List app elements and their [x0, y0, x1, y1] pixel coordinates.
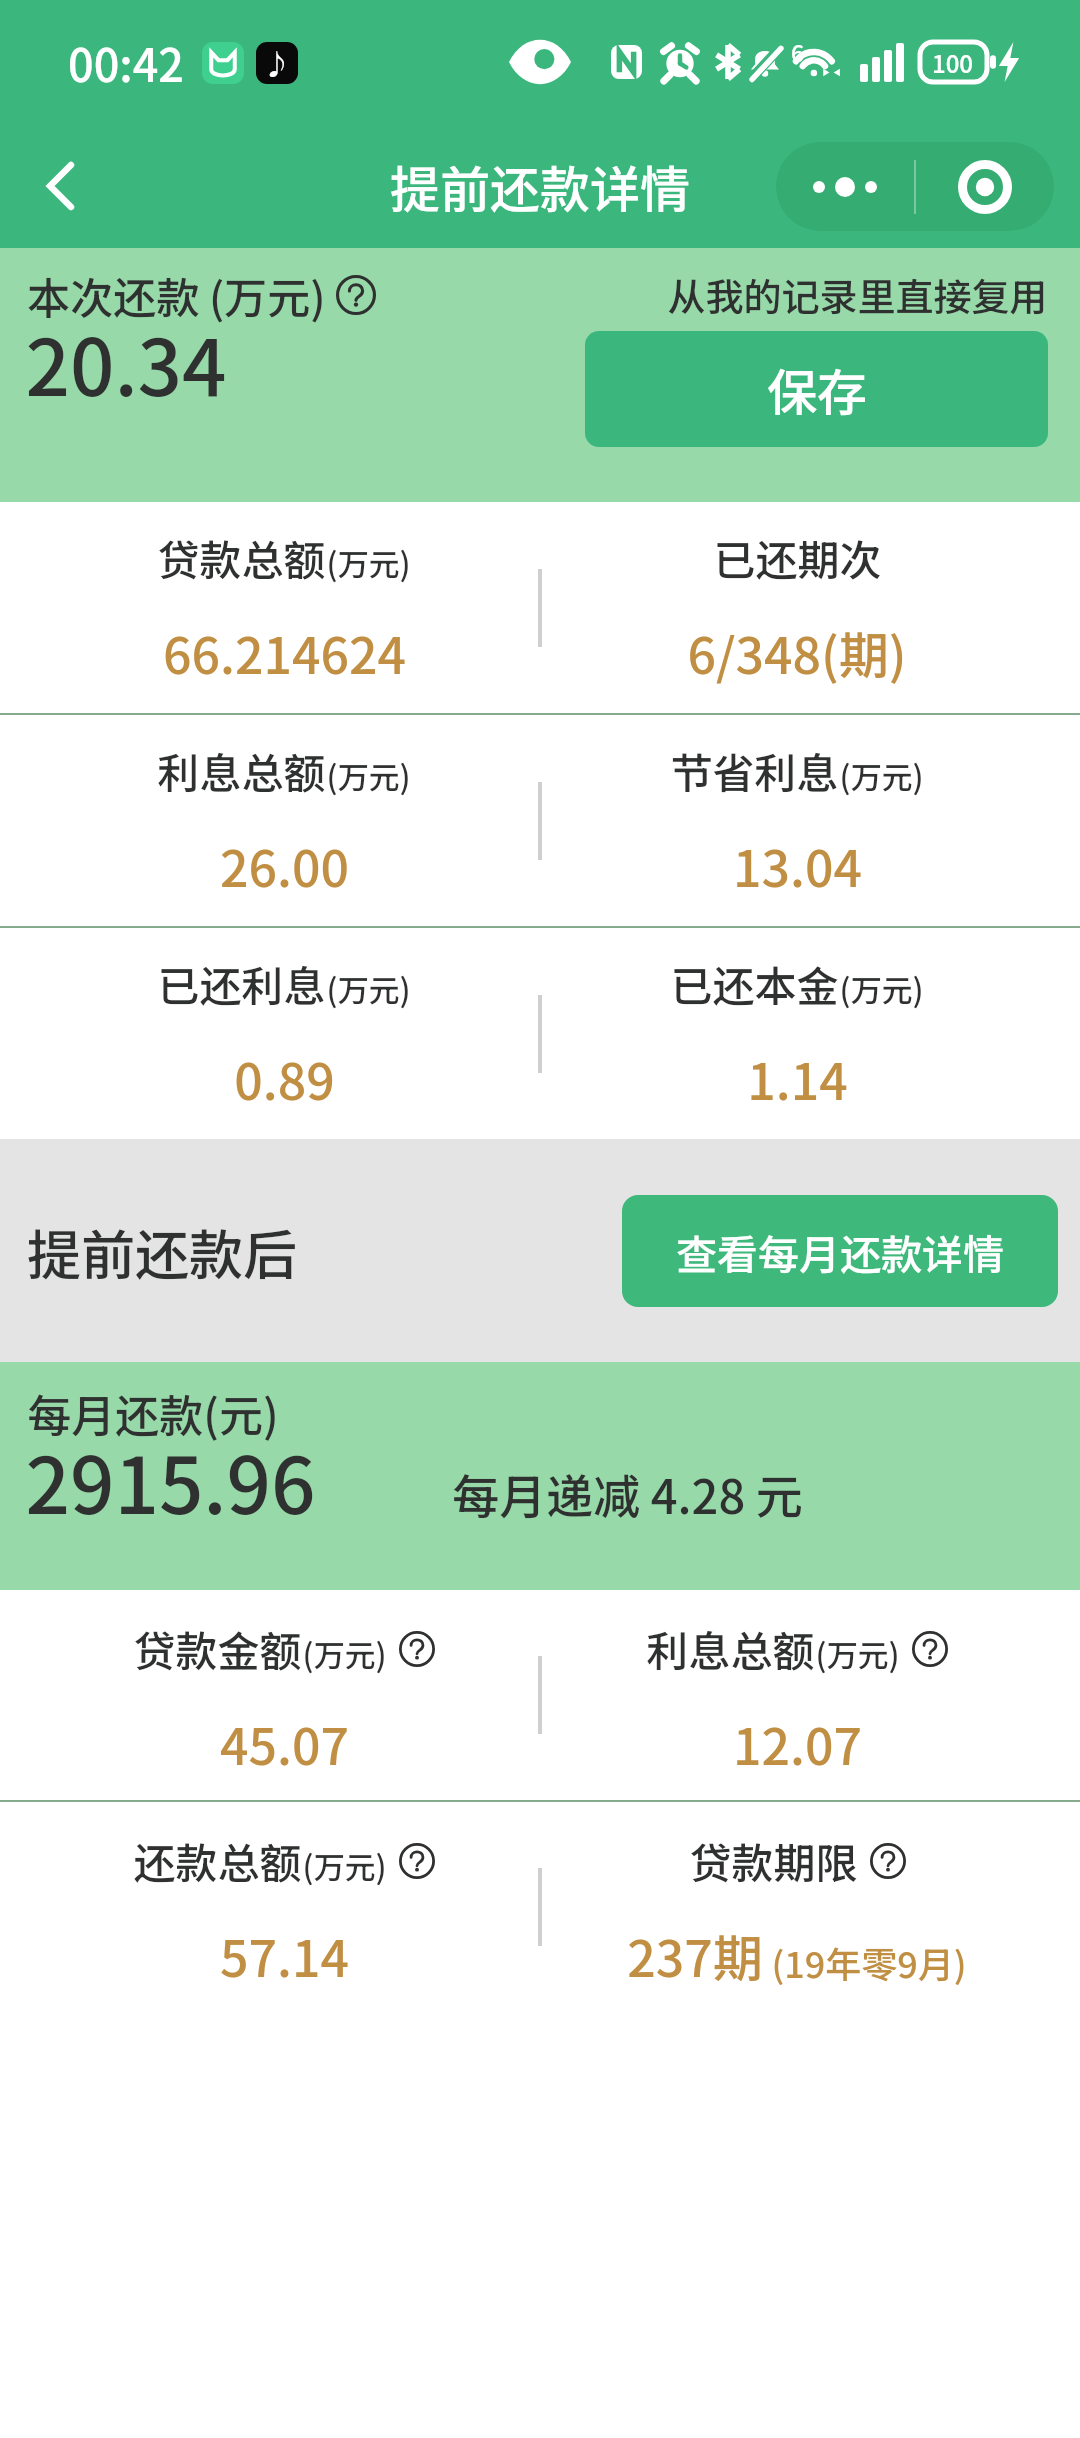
- staticText: 利息总额: [157, 740, 326, 801]
- staticText: (万元): [326, 540, 411, 585]
- staticText: 保存: [767, 353, 867, 425]
- staticText: (万元): [326, 753, 411, 798]
- button[interactable]: Back: [20, 146, 100, 226]
- staticText: (万元): [839, 966, 924, 1011]
- staticText: (万元): [815, 1631, 900, 1676]
- button[interactable]: More options: [776, 142, 914, 231]
- staticText: 已还本金: [670, 953, 839, 1014]
- staticText: 100: [932, 45, 974, 80]
- staticText: 还款总额: [133, 1830, 302, 1891]
- staticText: 已还期次: [713, 527, 882, 588]
- button[interactable]: 贷款总额: [27, 502, 540, 713]
- staticText: 6/348(期): [687, 616, 907, 688]
- button[interactable]: 保存: [585, 331, 1048, 447]
- staticText: 00:42: [68, 30, 185, 95]
- staticText: 查看每月还款详情: [676, 1222, 1004, 1281]
- staticText: 已还利息: [157, 953, 326, 1014]
- button[interactable]: Close mini program: [916, 142, 1054, 231]
- button[interactable]: 贷款金额: [27, 1596, 540, 1800]
- staticText: 66.214624: [163, 616, 406, 688]
- staticText: 26.00: [220, 829, 349, 901]
- staticText: (万元): [302, 1843, 387, 1888]
- staticText: 提前还款后: [27, 1212, 297, 1290]
- button[interactable]: 查看每月还款详情: [622, 1195, 1058, 1307]
- staticText: 从我的记录里直接复用: [667, 267, 1048, 322]
- button[interactable]: 已还期次: [540, 502, 1053, 713]
- staticText: 本次还款 (万元): [27, 264, 326, 326]
- staticText: 0.89: [234, 1042, 335, 1114]
- button[interactable]: 利息总额: [27, 715, 540, 926]
- staticText: (万元): [302, 1631, 387, 1676]
- staticText: 利息总额: [646, 1618, 815, 1679]
- staticText: (万元): [326, 966, 411, 1011]
- staticText: 贷款金额: [133, 1618, 302, 1679]
- button[interactable]: 还款总额: [27, 1808, 540, 2012]
- staticText: (万元): [839, 753, 924, 798]
- staticText: 贷款总额: [157, 527, 326, 588]
- staticText: 1.14: [747, 1042, 848, 1114]
- staticText: 每月递减 4.28 元: [452, 1459, 803, 1527]
- staticText: (19年零9月): [763, 1936, 967, 1988]
- staticText: 6: [791, 35, 805, 68]
- staticText: 57.14: [220, 1919, 349, 1991]
- staticText: 贷款期限: [689, 1830, 858, 1891]
- staticText: 20.34: [25, 306, 227, 419]
- staticText: 45.07: [220, 1707, 349, 1779]
- staticText: 12.07: [733, 1707, 862, 1779]
- staticText: 237期: [627, 1919, 763, 1991]
- staticText: 13.04: [733, 829, 862, 901]
- button[interactable]: 已还本金: [540, 928, 1053, 1139]
- staticText: 每月还款(元): [27, 1381, 279, 1445]
- staticText: 节省利息: [670, 740, 839, 801]
- staticText: 2915.96: [25, 1424, 316, 1537]
- button[interactable]: 已还利息: [27, 928, 540, 1139]
- staticText: 提前还款详情: [390, 150, 690, 222]
- staticText: ♪: [263, 43, 292, 84]
- button[interactable]: 节省利息: [540, 715, 1053, 926]
- button[interactable]: 利息总额: [540, 1596, 1053, 1800]
- button[interactable]: 贷款期限: [540, 1808, 1053, 2012]
